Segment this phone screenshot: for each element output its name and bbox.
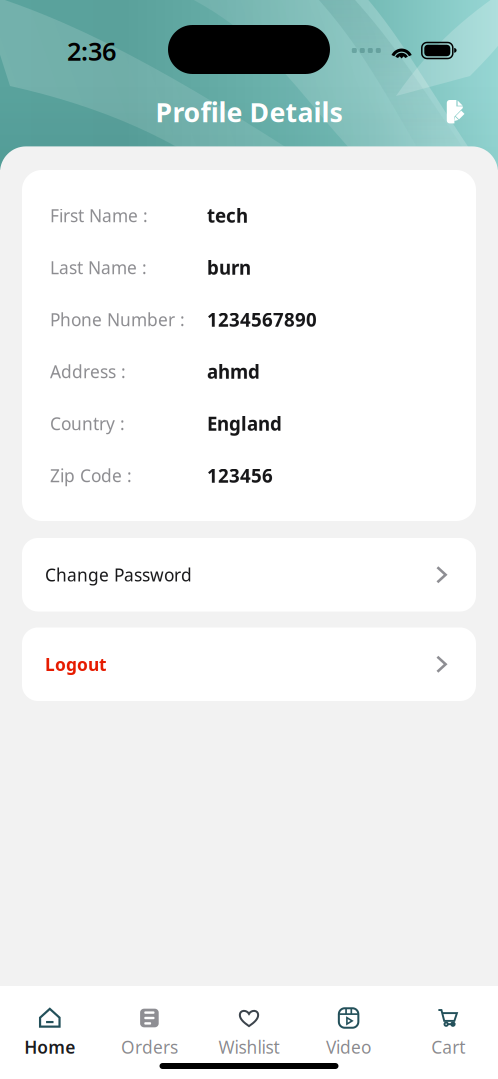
- staticText: Change Password: [45, 563, 192, 586]
- staticText: Country :: [50, 412, 125, 435]
- button[interactable]: Cart: [398, 986, 498, 1079]
- button[interactable]: Logout: [22, 627, 476, 701]
- staticText: Home: [24, 1035, 75, 1058]
- staticText: Profile Details: [155, 94, 342, 130]
- staticText: 123456: [207, 463, 273, 488]
- staticText: First Name :: [50, 204, 148, 227]
- staticText: England: [207, 411, 282, 436]
- button[interactable]: Video: [299, 986, 398, 1079]
- staticText: Video: [326, 1035, 371, 1058]
- button[interactable]: Orders: [100, 986, 199, 1079]
- staticText: Zip Code :: [50, 464, 132, 487]
- button[interactable]: Change Password: [22, 538, 476, 611]
- staticText: Wishlist: [218, 1035, 279, 1058]
- staticText: tech: [207, 203, 248, 228]
- staticText: Last Name :: [50, 256, 147, 279]
- staticText: Logout: [45, 653, 107, 676]
- staticText: 2:36: [67, 34, 116, 68]
- staticText: ahmd: [207, 359, 260, 384]
- staticText: 1234567890: [207, 307, 317, 332]
- staticText: burn: [207, 255, 251, 280]
- staticText: Phone Number :: [50, 308, 185, 331]
- staticText: Address :: [50, 360, 126, 383]
- button[interactable]: Edit profile: [446, 100, 465, 124]
- button[interactable]: Wishlist: [199, 986, 299, 1079]
- button[interactable]: Home: [0, 986, 100, 1079]
- staticText: Cart: [431, 1035, 465, 1058]
- staticText: Orders: [121, 1035, 178, 1058]
